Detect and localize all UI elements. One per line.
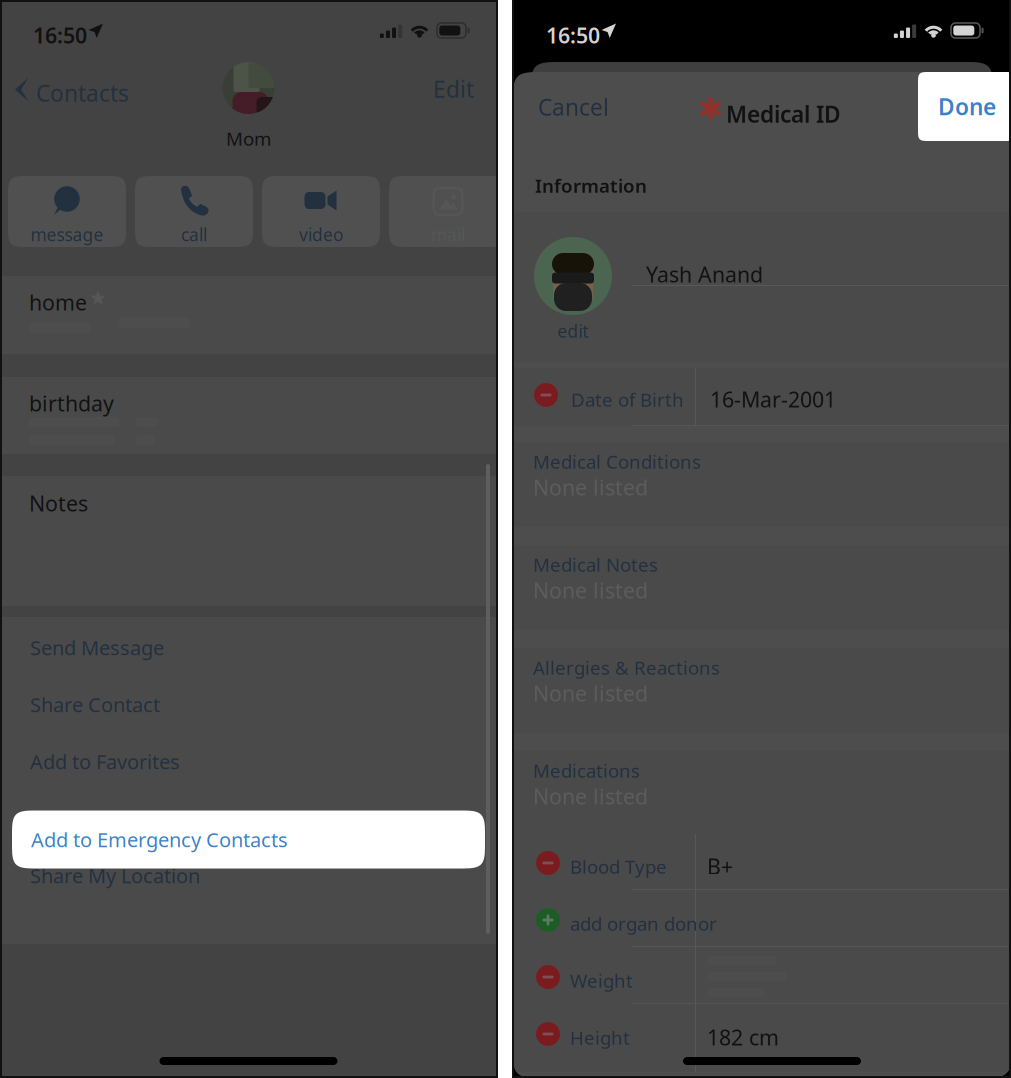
button[interactable]: Medications [513, 751, 1011, 836]
staticText: Medical Notes [533, 552, 658, 577]
staticText: Medications [533, 758, 640, 783]
staticText: Date of Birth [571, 387, 684, 412]
staticText: Mom [226, 126, 271, 151]
staticText: None listed [533, 782, 648, 810]
staticText: message [30, 223, 103, 246]
button[interactable]: edit [534, 320, 612, 342]
staticText: edit [557, 319, 588, 342]
button[interactable]: Medical Notes [513, 545, 1011, 630]
staticText: B+ [707, 852, 733, 880]
button[interactable]: Cancel [513, 72, 623, 142]
staticText: Add to Favorites [30, 748, 180, 775]
staticText: home [29, 288, 87, 316]
staticText: Add to Emergency Contacts [31, 826, 288, 853]
button[interactable]: Share Contact [0, 676, 497, 733]
staticText: Contacts [36, 78, 129, 108]
staticText: birthday [29, 389, 114, 417]
staticText: Yash Anand [646, 260, 763, 288]
button[interactable]: Add to Favorites [0, 733, 497, 790]
staticText: Done [938, 91, 996, 121]
button[interactable]: Done [918, 72, 1011, 142]
staticText: Information [535, 173, 647, 198]
staticText: Send Message [30, 634, 164, 661]
staticText: Cancel [538, 92, 609, 122]
staticText: 16:50 [546, 21, 600, 49]
button[interactable]: call [135, 176, 253, 247]
button[interactable]: Done [918, 72, 1011, 141]
button[interactable]: Allergies & Reactions [513, 648, 1011, 733]
staticText: Share Contact [30, 691, 160, 718]
staticText: Height [570, 1025, 630, 1050]
staticText: Medical ID [726, 99, 841, 129]
staticText: 16-Mar-2001 [710, 385, 836, 413]
staticText: Blood Type [570, 854, 667, 879]
button[interactable]: video [262, 176, 380, 247]
button[interactable]: Edit [407, 65, 497, 113]
button[interactable]: Contacts [0, 65, 130, 113]
staticText: Medical Conditions [533, 449, 701, 474]
staticText: Allergies & Reactions [533, 655, 720, 680]
staticText: None listed [533, 679, 648, 707]
staticText: Edit [433, 74, 474, 104]
staticText: Done [938, 92, 996, 122]
staticText: call [181, 223, 207, 246]
staticText: None listed [533, 473, 648, 501]
staticText: Share My Location [30, 862, 200, 889]
staticText: Add to Emergency Contacts [30, 805, 287, 832]
staticText: video [299, 223, 343, 246]
staticText: Weight [570, 968, 633, 993]
staticText: None listed [533, 576, 648, 604]
button[interactable]: mail [389, 176, 507, 247]
staticText: add organ donor [570, 911, 717, 936]
button[interactable]: message [8, 176, 126, 247]
button[interactable]: Medical Conditions [513, 442, 1011, 527]
staticText: Notes [29, 489, 88, 517]
button[interactable]: Share My Location [0, 847, 497, 904]
button[interactable]: Send Message [0, 619, 497, 676]
staticText: 182 cm [707, 1023, 779, 1051]
staticText: 16:50 [33, 21, 87, 49]
button[interactable]: Add to Emergency Contacts [0, 790, 497, 847]
button[interactable]: Add to Emergency Contacts [12, 810, 485, 869]
